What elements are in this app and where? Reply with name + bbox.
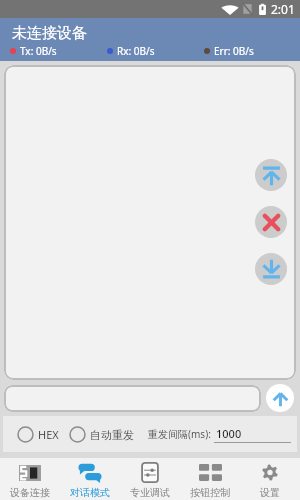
button[interactable]: Scroll to top <box>255 159 287 191</box>
button[interactable] <box>4 385 261 412</box>
staticText: 按钮控制 <box>190 486 230 499</box>
staticText: Err: 0B/s <box>214 44 254 58</box>
button[interactable]: 专业调试 <box>120 458 180 500</box>
staticText: 对话模式 <box>70 486 110 499</box>
staticText: 专业调试 <box>130 486 170 499</box>
staticText: 未连接设备 <box>12 24 87 41</box>
staticText: Tx: 0B/s <box>20 44 57 58</box>
button[interactable]: 按钮控制 <box>180 458 240 500</box>
staticText: 设备连接 <box>10 486 50 499</box>
button[interactable]: 设置 <box>240 458 300 500</box>
button[interactable]: 自动重发 <box>69 426 134 443</box>
button[interactable]: 设备连接 <box>0 458 60 500</box>
button[interactable] <box>4 65 296 380</box>
staticText: 设置 <box>260 486 280 499</box>
staticText: Rx: 0B/s <box>117 44 155 58</box>
staticText: 2:01 <box>271 1 295 17</box>
button[interactable]: HEX <box>17 426 59 443</box>
staticText: 1000 <box>216 426 242 441</box>
button[interactable]: 对话模式 <box>60 458 120 500</box>
button[interactable]: Send <box>266 384 294 412</box>
staticText: 自动重发 <box>90 428 134 442</box>
button[interactable]: Scroll to bottom <box>255 253 287 285</box>
staticText: 重发间隔(ms): <box>148 427 211 441</box>
button[interactable]: Clear log <box>255 206 287 238</box>
staticText: HEX <box>38 427 59 442</box>
